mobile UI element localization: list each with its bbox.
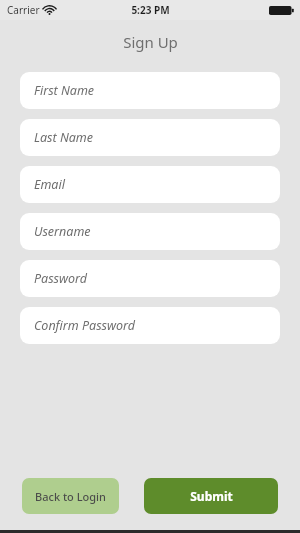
button[interactable]: Password (20, 260, 280, 297)
staticText: Sign Up (123, 32, 178, 52)
other: Battery full (269, 5, 294, 16)
staticText: Submit (190, 488, 233, 504)
staticText: Password (34, 270, 88, 287)
staticText: Carrier (7, 3, 40, 17)
button[interactable]: Back to Login (22, 478, 119, 514)
button[interactable]: Confirm Password (20, 307, 280, 344)
button[interactable]: Email (20, 166, 280, 203)
button[interactable]: Last Name (20, 119, 280, 156)
button[interactable]: First Name (20, 72, 280, 109)
staticText: Confirm Password (34, 317, 136, 334)
staticText: Back to Login (35, 489, 106, 504)
button[interactable]: Username (20, 213, 280, 250)
staticText: Username (34, 223, 91, 240)
button[interactable]: Submit (144, 478, 278, 514)
staticText: First Name (34, 82, 95, 99)
staticText: Last Name (34, 129, 93, 146)
staticText: Email (34, 176, 65, 193)
staticText: 5:23 PM (131, 3, 170, 17)
